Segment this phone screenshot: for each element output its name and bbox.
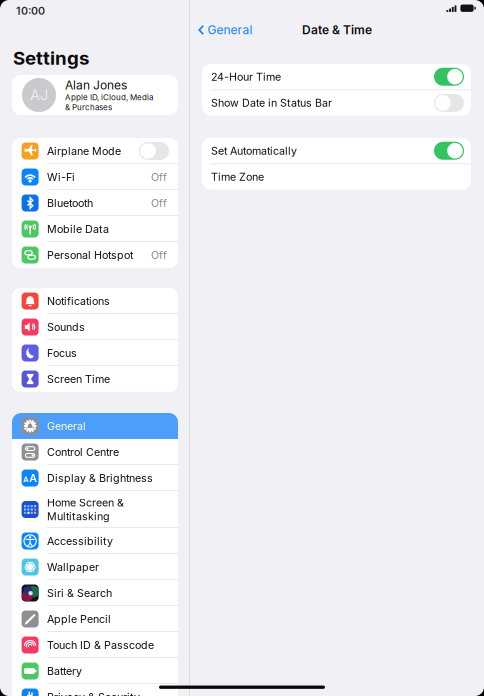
- button[interactable]: Airplane Mode: [12, 138, 178, 164]
- button[interactable]: Battery: [12, 658, 178, 684]
- staticText: Date & Time: [302, 23, 372, 37]
- button[interactable]: Sounds: [12, 314, 178, 340]
- staticText: Control Centre: [47, 446, 119, 458]
- staticText: & Purchases: [65, 103, 112, 112]
- button[interactable]: Screen Time: [12, 366, 178, 392]
- staticText: Alan Jones: [65, 78, 127, 92]
- button[interactable]: Personal Hotspot: [12, 242, 178, 268]
- staticText: Settings: [13, 47, 89, 69]
- staticText: Touch ID & Passcode: [47, 639, 154, 651]
- staticText: Accessibility: [47, 535, 113, 547]
- button[interactable]: A: [12, 465, 178, 491]
- staticText: Mobile Data: [47, 223, 109, 235]
- button[interactable]: Touch ID & Passcode: [12, 632, 178, 658]
- button[interactable]: AJ: [12, 75, 178, 115]
- button[interactable]: Siri & Search: [12, 580, 178, 606]
- staticText: Apple ID, iCloud, Media: [65, 93, 153, 102]
- button[interactable]: Show Date in Status Bar: [202, 90, 471, 116]
- staticText: Battery: [47, 665, 82, 677]
- staticText: Bluetooth: [47, 197, 93, 209]
- staticText: Time Zone: [211, 171, 264, 183]
- staticText: Set Automatically: [211, 144, 297, 157]
- staticText: Siri & Search: [47, 587, 112, 599]
- button[interactable]: Accessibility: [12, 528, 178, 554]
- button[interactable]: Time Zone: [202, 164, 471, 190]
- staticText: Wi-Fi: [47, 171, 75, 183]
- staticText: Apple Pencil: [47, 613, 111, 625]
- button[interactable]: General: [196, 20, 254, 40]
- staticText: Home Screen &: [47, 496, 124, 509]
- button[interactable]: Set Automatically: [202, 138, 471, 163]
- button[interactable]: Focus: [12, 340, 178, 366]
- button[interactable]: Mobile Data: [12, 216, 178, 242]
- staticText: Display & Brightness: [47, 472, 153, 484]
- staticText: Sounds: [47, 321, 85, 333]
- button[interactable]: Notifications: [12, 288, 178, 314]
- staticText: Privacy & Security: [47, 691, 140, 696]
- staticText: General: [207, 23, 252, 37]
- staticText: Personal Hotspot: [47, 249, 133, 261]
- staticText: 10:00: [16, 4, 45, 17]
- staticText: A: [29, 472, 37, 484]
- button[interactable]: Control Centre: [12, 439, 178, 465]
- button[interactable]: Home Screen &: [12, 491, 178, 528]
- button[interactable]: Wallpaper: [12, 554, 178, 580]
- button[interactable]: Bluetooth: [12, 190, 178, 216]
- staticText: Screen Time: [47, 373, 110, 385]
- button[interactable]: Apple Pencil: [12, 606, 178, 632]
- staticText: 24-Hour Time: [211, 70, 281, 83]
- staticText: Off: [151, 197, 167, 209]
- staticText: Wallpaper: [47, 561, 99, 573]
- staticText: General: [47, 420, 86, 432]
- staticText: Off: [151, 171, 167, 183]
- button[interactable]: Privacy & Security: [12, 684, 178, 696]
- staticText: Airplane Mode: [47, 145, 121, 157]
- staticText: AJ: [30, 86, 48, 104]
- button[interactable]: 24-Hour Time: [202, 64, 471, 89]
- staticText: Multitasking: [47, 510, 110, 523]
- button[interactable]: General: [12, 413, 178, 439]
- staticText: Show Date in Status Bar: [211, 97, 332, 109]
- staticText: Focus: [47, 347, 77, 359]
- staticText: Notifications: [47, 295, 110, 307]
- staticText: Off: [151, 249, 167, 261]
- button[interactable]: Wi-Fi: [12, 164, 178, 190]
- staticText: A: [23, 475, 29, 484]
